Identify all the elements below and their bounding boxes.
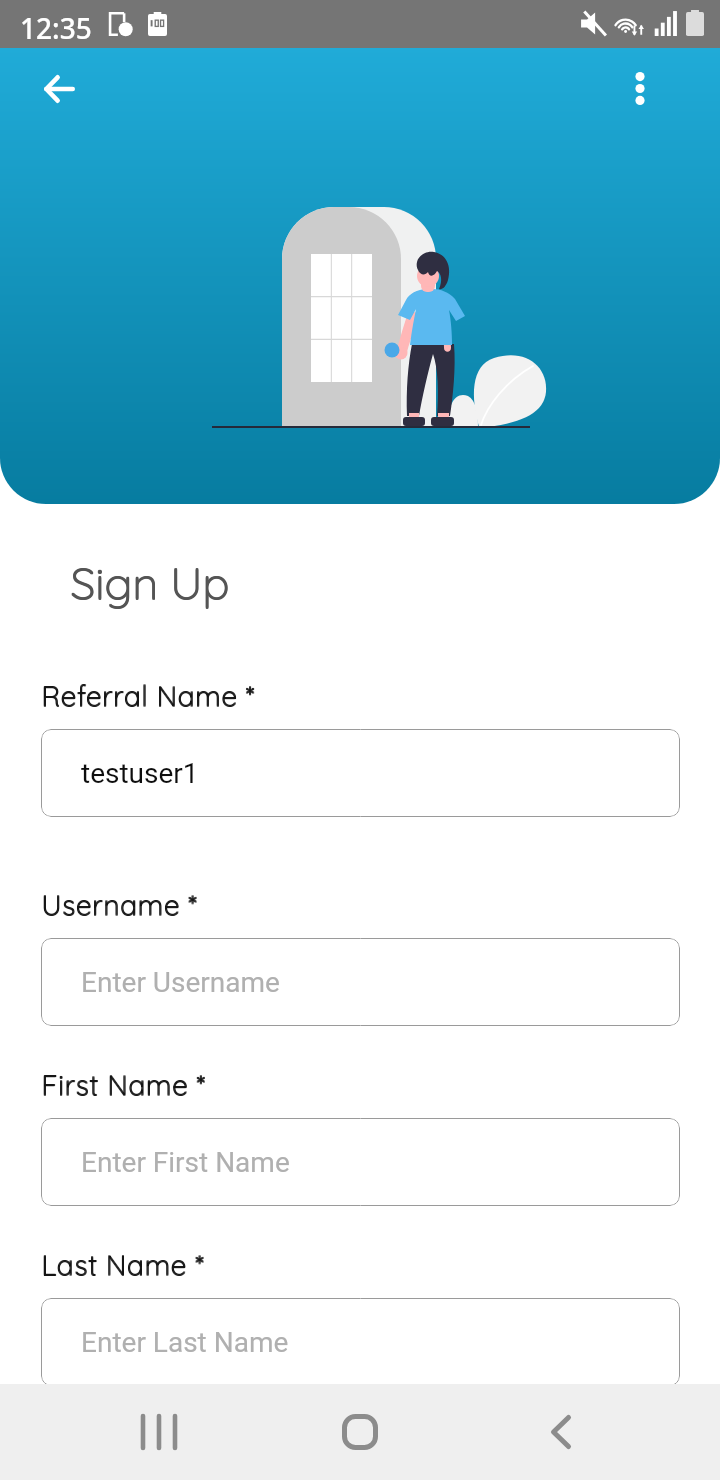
button[interactable]: Enter Username	[41, 938, 680, 1026]
staticText: Referral Name *	[41, 679, 255, 714]
staticText: Referral Name *	[42, 678, 256, 713]
staticText: First Name *	[41, 1067, 206, 1102]
staticText: Referral Name *	[42, 679, 256, 714]
staticText: Sign Up	[70, 554, 229, 610]
staticText: Username *	[41, 888, 197, 923]
button[interactable]: Back	[21, 51, 97, 127]
button[interactable]: Recent apps	[111, 1384, 207, 1480]
staticText: Enter First Name	[81, 1146, 290, 1179]
button[interactable]: testuser1	[41, 729, 680, 817]
staticText: Sign Up	[70, 555, 229, 611]
staticText: Referral Name *	[41, 678, 255, 713]
staticText: 12:35	[20, 9, 92, 47]
staticText: Username *	[42, 887, 198, 922]
button[interactable]: Enter First Name	[41, 1118, 680, 1206]
staticText: Enter Username	[81, 966, 280, 999]
staticText: Username *	[41, 887, 197, 922]
staticText: testuser1	[81, 757, 199, 790]
staticText: First Name *	[42, 1067, 207, 1102]
staticText: Last Name *	[41, 1248, 204, 1283]
button[interactable]: Enter Last Name	[41, 1298, 680, 1386]
staticText: Enter Last Name	[81, 1326, 289, 1359]
staticText: Sign Up	[71, 555, 230, 611]
staticText: Sign Up	[71, 554, 230, 610]
staticText: Username *	[42, 888, 198, 923]
button[interactable]: Home	[312, 1384, 408, 1480]
staticText: Last Name *	[41, 1247, 204, 1282]
button[interactable]: More options	[602, 50, 678, 126]
staticText: First Name *	[41, 1068, 206, 1103]
button[interactable]: Back	[513, 1384, 609, 1480]
staticText: First Name *	[42, 1068, 207, 1103]
staticText: Last Name *	[42, 1248, 205, 1283]
staticText: Last Name *	[42, 1247, 205, 1282]
